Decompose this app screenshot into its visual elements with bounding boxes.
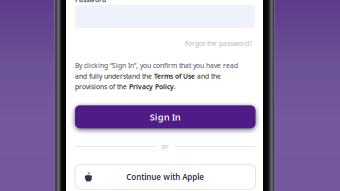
staticText: Forgot the password? (185, 39, 252, 48)
staticText: Continue with Apple (126, 171, 204, 182)
staticText: or (161, 142, 168, 151)
staticText: Password (75, 0, 106, 4)
staticText: Sign In (150, 111, 181, 123)
button[interactable]: Continue with Apple (75, 164, 255, 189)
staticText: By clicking “Sign In”, you confirm that … (75, 61, 238, 70)
button[interactable]: Sign In (75, 105, 255, 128)
button[interactable]: Forgot the password? (183, 37, 254, 50)
staticText: provisions of the Privacy Policy. (75, 82, 176, 91)
staticText: and fully understand the Terms of Use an… (75, 72, 221, 81)
